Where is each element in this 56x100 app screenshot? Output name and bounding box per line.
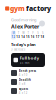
staticText: 15 bbox=[26, 35, 30, 39]
staticText: F bbox=[32, 31, 33, 35]
staticText: factory bbox=[26, 4, 51, 13]
staticText: 4 x 12 bbox=[19, 91, 28, 95]
staticText: Good morning bbox=[11, 17, 36, 22]
button[interactable]: M bbox=[11, 30, 16, 39]
button[interactable]: Bench press bbox=[11, 69, 45, 77]
button[interactable]: Deadlift bbox=[11, 78, 45, 86]
staticText: 45 min bbox=[20, 61, 30, 65]
staticText: Squats bbox=[19, 87, 28, 91]
staticText: S bbox=[42, 31, 43, 35]
staticText: 12 bbox=[11, 35, 15, 39]
staticText: 3 exercises bbox=[11, 48, 25, 51]
button[interactable]: S bbox=[40, 30, 45, 39]
staticText: 13 bbox=[16, 35, 20, 39]
button[interactable]: S bbox=[35, 30, 40, 39]
button[interactable]: Profile bbox=[39, 20, 45, 26]
staticText: Full body bbox=[20, 55, 39, 61]
staticText: 18 bbox=[41, 35, 45, 39]
staticText: 3 x 8 bbox=[19, 82, 26, 86]
staticText: M bbox=[12, 31, 14, 35]
staticText: 17 bbox=[36, 35, 40, 39]
staticText: 14 bbox=[21, 35, 25, 39]
staticText: S bbox=[37, 31, 38, 35]
button[interactable]: T bbox=[26, 30, 30, 39]
staticText: Today's plan bbox=[11, 42, 36, 47]
staticText: 4 x 10 bbox=[19, 73, 28, 77]
staticText: T bbox=[18, 31, 19, 35]
button[interactable]: W bbox=[21, 30, 26, 39]
staticText: W bbox=[22, 31, 24, 35]
button[interactable]: Squats bbox=[11, 87, 45, 95]
staticText: Bench press bbox=[19, 69, 36, 73]
button[interactable]: Full body bbox=[11, 53, 45, 67]
staticText: Deadlift bbox=[19, 78, 31, 82]
staticText: Alex Porter bbox=[11, 23, 39, 30]
staticText: 16 bbox=[31, 35, 35, 39]
button[interactable]: F bbox=[30, 30, 35, 39]
staticText: gym bbox=[10, 4, 25, 13]
button[interactable]: T bbox=[16, 30, 21, 39]
